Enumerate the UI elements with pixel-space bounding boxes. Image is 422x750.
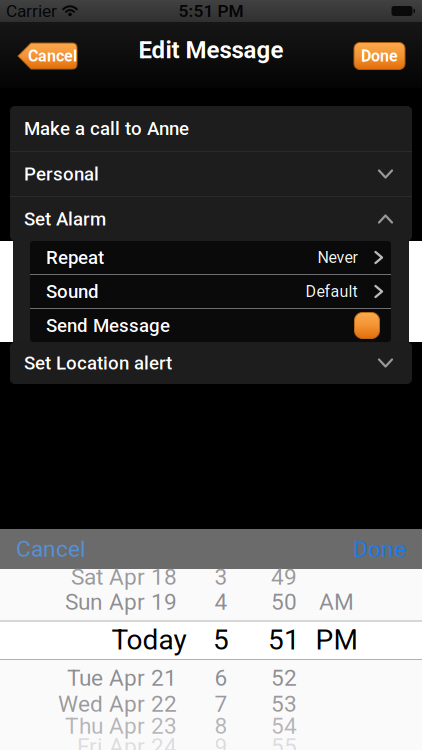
staticText: Never <box>317 248 357 267</box>
staticText: 49 <box>271 564 297 590</box>
staticText: Wed Apr 22 <box>58 691 177 717</box>
staticText: Fri Apr 24 <box>77 734 177 750</box>
staticText: Done <box>353 536 406 562</box>
staticText: 51 <box>268 624 300 656</box>
staticText: Done <box>361 47 398 65</box>
button[interactable]: Personal <box>10 152 412 196</box>
staticText: Set Location alert <box>24 352 172 374</box>
staticText: Cancel <box>28 47 77 65</box>
staticText: 55 <box>271 734 297 750</box>
staticText: 53 <box>271 691 297 717</box>
staticText: 8 <box>214 713 227 739</box>
button[interactable]: Set Location alert <box>10 342 412 384</box>
staticText: Cancel <box>16 536 86 562</box>
staticText: Thu Apr 23 <box>65 713 177 739</box>
staticText: Tue Apr 21 <box>67 665 177 691</box>
button[interactable]: Done <box>353 42 405 70</box>
staticText: Set Alarm <box>24 208 106 230</box>
staticText: Edit Message <box>138 36 283 64</box>
staticText: 50 <box>271 589 297 615</box>
staticText: 5:51 PM <box>178 1 243 21</box>
button[interactable]: Sound <box>30 275 391 308</box>
button[interactable]: Cancel <box>16 536 86 562</box>
staticText: Carrier <box>6 1 57 21</box>
button[interactable]: Done <box>353 536 406 562</box>
staticText: 6 <box>214 665 227 691</box>
staticText: Send Message <box>46 315 170 336</box>
staticText: Sat Apr 18 <box>71 564 177 590</box>
staticText: 54 <box>271 713 297 739</box>
staticText: 4 <box>214 589 227 615</box>
staticText: Default <box>305 282 357 301</box>
button[interactable]: Cancel <box>17 42 77 69</box>
button[interactable]: Send Message <box>354 312 380 339</box>
staticText: 3 <box>214 564 227 590</box>
staticText: Personal <box>24 163 99 185</box>
staticText: AM <box>319 589 354 615</box>
staticText: 5 <box>213 624 229 656</box>
button[interactable]: Make a call to Anne <box>10 106 412 151</box>
staticText: Sound <box>46 281 99 302</box>
staticText: Make a call to Anne <box>24 118 189 139</box>
staticText: Sun Apr 19 <box>65 589 177 615</box>
staticText: PM <box>315 624 357 656</box>
staticText: Today <box>111 624 186 656</box>
staticText: Repeat <box>46 247 104 268</box>
button[interactable]: Repeat <box>30 241 391 274</box>
staticText: 9 <box>214 734 227 750</box>
button[interactable]: Set Alarm <box>10 197 412 241</box>
staticText: 52 <box>271 665 297 691</box>
staticText: 7 <box>214 691 227 717</box>
